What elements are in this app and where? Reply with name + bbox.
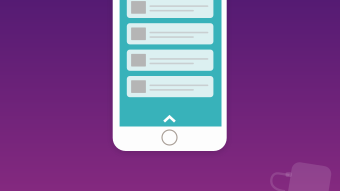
button[interactable]: List item [127,50,213,71]
button[interactable]: List item [127,76,213,97]
button[interactable]: Home [162,130,177,145]
button[interactable]: List item [127,23,213,44]
button[interactable]: List item [127,0,213,18]
button[interactable]: Scroll to top [164,117,175,122]
